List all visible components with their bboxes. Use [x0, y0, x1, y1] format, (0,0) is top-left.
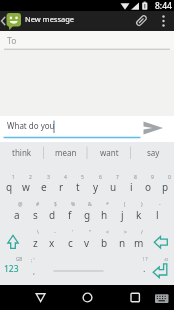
button[interactable] [26, 219, 43, 246]
button[interactable] [124, 285, 146, 310]
button[interactable]: want [87, 142, 131, 163]
staticText: GB [16, 256, 23, 262]
staticText: 4 [64, 174, 67, 181]
button[interactable] [113, 219, 130, 246]
button[interactable] [78, 191, 95, 218]
staticText: p [162, 180, 169, 194]
staticText: 7 [116, 174, 119, 181]
staticText: g [84, 208, 91, 222]
button[interactable] [96, 191, 113, 218]
staticText: . [143, 262, 146, 274]
staticText: 3 [47, 174, 50, 181]
staticText: b [101, 236, 108, 250]
staticText: mean [55, 147, 77, 158]
staticText: New message [25, 14, 75, 24]
staticText: j [121, 208, 124, 222]
button[interactable] [26, 247, 43, 279]
staticText: f [68, 208, 72, 222]
button[interactable] [0, 164, 17, 191]
staticText: :O [164, 257, 169, 262]
staticText: $ [54, 201, 57, 208]
staticText: want [100, 147, 119, 158]
staticText: n [119, 236, 126, 250]
button[interactable] [78, 219, 95, 246]
staticText: @ [18, 201, 23, 208]
staticText: s [33, 208, 38, 222]
staticText: o [145, 180, 152, 194]
button[interactable] [17, 164, 34, 191]
staticText: " [89, 229, 92, 236]
button[interactable] [26, 191, 43, 218]
staticText: c [68, 236, 73, 250]
staticText: ( [124, 201, 126, 208]
staticText: 8 [134, 174, 137, 181]
button[interactable] [131, 191, 148, 218]
button[interactable] [131, 219, 148, 246]
staticText: - [54, 229, 56, 236]
staticText: 8:44 [155, 0, 172, 11]
button[interactable] [44, 247, 122, 279]
staticText: / [141, 229, 143, 236]
staticText: m [134, 236, 144, 250]
button[interactable] [61, 191, 78, 218]
staticText: - [159, 201, 161, 208]
button[interactable] [35, 164, 52, 191]
staticText: e [41, 180, 47, 194]
staticText: x [49, 236, 55, 250]
button[interactable] [104, 164, 121, 191]
staticText: What do you [7, 120, 55, 131]
staticText: h [101, 208, 108, 222]
staticText: 2 [29, 174, 32, 181]
button[interactable] [44, 191, 61, 218]
staticText: > [124, 229, 127, 236]
button[interactable] [148, 191, 165, 218]
staticText: i [130, 180, 133, 194]
staticText: say [147, 147, 160, 158]
button[interactable]: To [0, 31, 174, 50]
staticText: r [59, 180, 64, 194]
staticText: a [14, 208, 20, 222]
button[interactable] [0, 247, 26, 279]
button[interactable] [96, 219, 113, 246]
button[interactable] [140, 247, 174, 279]
button[interactable] [61, 219, 78, 246]
button[interactable] [77, 285, 99, 310]
button[interactable] [157, 164, 174, 191]
staticText: u [110, 180, 117, 194]
staticText: 5 [81, 174, 84, 181]
button[interactable] [139, 164, 156, 191]
button[interactable] [52, 164, 69, 191]
staticText: * [106, 201, 109, 208]
button[interactable] [154, 11, 174, 31]
button[interactable] [0, 219, 26, 246]
button[interactable] [0, 11, 24, 31]
button[interactable] [151, 285, 173, 310]
button[interactable]: think [0, 142, 44, 163]
staticText: & [88, 201, 92, 208]
button[interactable]: mean [44, 142, 88, 163]
staticText: 1 [12, 174, 15, 181]
staticText: % [71, 201, 76, 208]
staticText: To [7, 35, 17, 47]
button[interactable] [9, 191, 26, 218]
staticText: v [84, 236, 90, 250]
staticText: y [93, 180, 99, 194]
button[interactable] [87, 164, 104, 191]
button[interactable] [44, 219, 61, 246]
button[interactable] [148, 219, 174, 246]
staticText: # [36, 201, 40, 208]
staticText: 0 [168, 174, 171, 181]
button[interactable] [130, 11, 152, 31]
button[interactable] [122, 164, 139, 191]
staticText: k [136, 208, 142, 222]
button[interactable]: say [131, 142, 174, 163]
button[interactable] [113, 191, 130, 218]
staticText: think [12, 147, 32, 158]
staticText: , [33, 266, 36, 276]
button[interactable] [0, 116, 174, 142]
button[interactable] [70, 164, 87, 191]
staticText: 6 [99, 174, 102, 181]
button[interactable] [30, 285, 52, 310]
staticText: 123 [4, 263, 19, 275]
